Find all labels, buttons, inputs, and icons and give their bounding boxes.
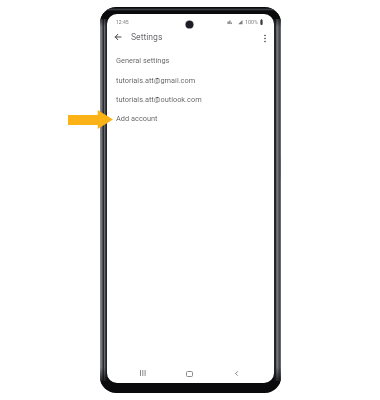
staticText: General settings [116, 56, 170, 65]
button[interactable]: tutorials.att@gmail.com [107, 71, 274, 90]
button[interactable]: tutorials.att@outlook.com [107, 90, 274, 109]
button[interactable]: More options [255, 28, 274, 48]
button[interactable]: Back [108, 27, 128, 47]
staticText: tutorials.att@outlook.com [116, 95, 202, 104]
button[interactable]: Back [226, 363, 246, 383]
staticText: 12:45 [116, 19, 129, 25]
button[interactable]: Home [179, 364, 199, 383]
staticText: Add account [116, 114, 158, 123]
staticText: tutorials.att@gmail.com [116, 76, 196, 85]
staticText: 100% [245, 19, 259, 25]
button[interactable]: Add account [107, 109, 274, 128]
button[interactable]: Recent apps [132, 363, 152, 383]
staticText: Settings [131, 32, 163, 42]
button[interactable]: General settings [107, 51, 274, 70]
